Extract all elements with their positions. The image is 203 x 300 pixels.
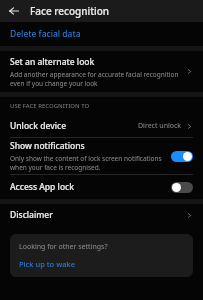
staticText: Only show the content of lock screen not… (10, 154, 165, 172)
staticText: USE FACE RECOGNITION TO (10, 102, 90, 110)
button[interactable]: Pick up to wake (19, 259, 75, 269)
button[interactable]: Disclaimer (0, 204, 203, 226)
button[interactable]: Delete facial data (0, 22, 203, 46)
button[interactable]: Access App lock (0, 175, 203, 199)
staticText: Unlock device (10, 120, 138, 132)
button[interactable]: Show notifications (0, 138, 203, 174)
staticText: Face recognition (30, 4, 110, 18)
staticText: Delete facial data (10, 28, 81, 40)
staticText: Looking for other settings? (19, 242, 108, 252)
button[interactable]: Unlock device (0, 115, 203, 137)
staticText: Set an alternate look (10, 56, 95, 68)
staticText: Show notifications (10, 140, 85, 152)
button[interactable]: Set an alternate look (0, 51, 203, 92)
staticText: Access App lock (10, 181, 171, 193)
staticText: Direct unlock (138, 121, 182, 131)
staticText: Disclaimer (10, 209, 186, 221)
staticText: Add another appearance for accurate faci… (10, 70, 180, 88)
staticText: Pick up to wake (19, 259, 75, 269)
button[interactable]: Back (6, 3, 22, 19)
